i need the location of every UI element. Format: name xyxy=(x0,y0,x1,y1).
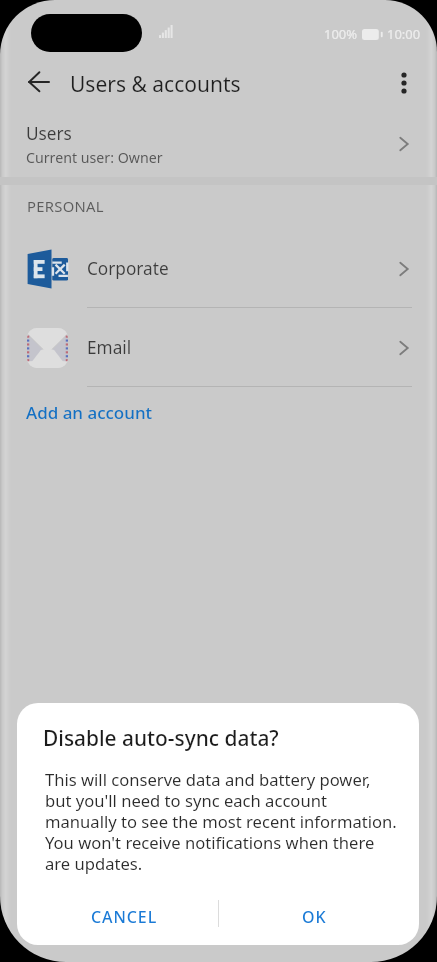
button[interactable]: Corporate xyxy=(0,230,437,307)
button[interactable]: Add an account xyxy=(0,387,437,437)
staticText: Corporate xyxy=(87,257,169,280)
button[interactable]: CANCEL xyxy=(41,889,208,945)
staticText: This will conserve data and battery powe… xyxy=(45,768,397,874)
staticText: 10:00 xyxy=(387,25,421,43)
button[interactable]: Email xyxy=(0,309,437,386)
staticText: Disable auto-sync data? xyxy=(43,724,279,752)
button[interactable]: OK xyxy=(219,889,409,945)
staticText: 100% xyxy=(324,25,358,43)
staticText: OK xyxy=(302,906,327,928)
button[interactable]: More options xyxy=(384,63,424,103)
button[interactable]: Users xyxy=(0,105,437,177)
staticText: Email xyxy=(87,336,132,359)
staticText: PERSONAL xyxy=(27,196,104,216)
staticText: CANCEL xyxy=(91,906,158,928)
staticText: Add an account xyxy=(26,401,153,424)
staticText: Users & accounts xyxy=(70,70,241,99)
staticText: Users xyxy=(26,122,72,145)
staticText: Current user: Owner xyxy=(26,148,163,167)
button[interactable]: Back xyxy=(19,62,59,102)
